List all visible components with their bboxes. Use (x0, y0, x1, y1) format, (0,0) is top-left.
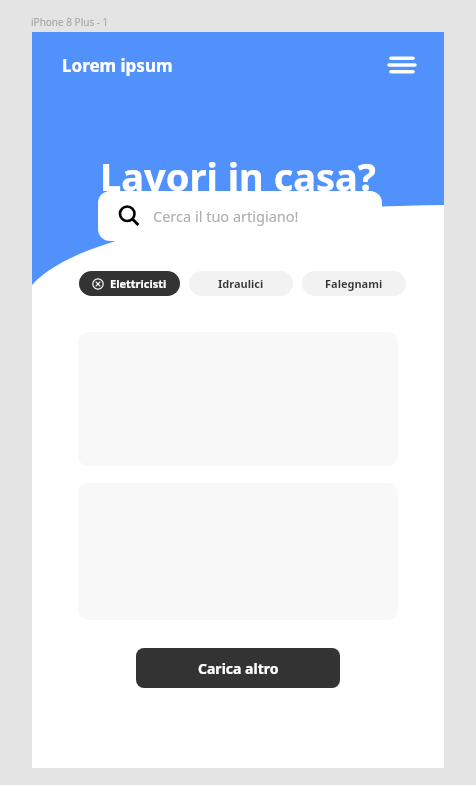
staticText: Carica altro (198, 659, 279, 678)
staticText: Falegnami (325, 276, 383, 291)
button[interactable]: Open menu (382, 45, 422, 85)
button[interactable]: Lorem ipsum (62, 54, 173, 77)
button[interactable]: Elettricisti (79, 271, 180, 296)
staticText: Lavori in casa? (100, 150, 376, 202)
staticText: iPhone 8 Plus - 1 (31, 15, 109, 29)
button[interactable]: Falegnami (302, 271, 406, 296)
staticText: Idraulici (218, 276, 264, 291)
button[interactable]: Cerca il tuo artigiano! (98, 191, 382, 241)
staticText: Lorem ipsum (62, 54, 173, 77)
staticText: Elettricisti (110, 276, 167, 291)
button[interactable]: Carica altro (136, 648, 340, 688)
button[interactable]: Idraulici (189, 271, 293, 296)
staticText: Cerca il tuo artigiano! (153, 206, 299, 226)
